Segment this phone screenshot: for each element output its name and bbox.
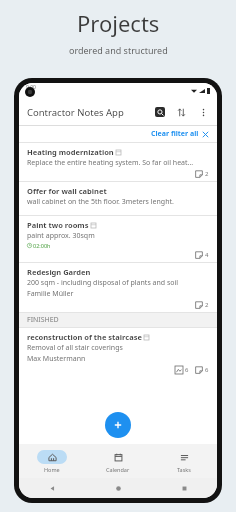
staticText: Projects: [77, 8, 160, 38]
staticText: 6: [205, 366, 209, 374]
staticText: 6: [185, 366, 189, 374]
staticText: Offer for wall cabinet: [27, 186, 107, 196]
staticText: reconstruction of the staircase: [27, 332, 142, 342]
button[interactable]: Calendar: [85, 444, 151, 478]
button[interactable]: Offer for wall cabinet: [19, 182, 217, 215]
staticText: Max Mustermann: [27, 354, 86, 364]
staticText: Clear filter all: [151, 129, 199, 139]
staticText: 2: [205, 301, 209, 309]
staticText: wall cabinet on the 5th floor. 3meters l…: [27, 197, 174, 207]
staticText: Contractor Notes App: [27, 106, 155, 119]
button[interactable]: More options: [197, 106, 209, 118]
button[interactable]: Add project: [105, 412, 131, 438]
staticText: Home: [44, 466, 60, 473]
button[interactable]: Redesign Garden: [19, 263, 217, 312]
staticText: ordered and structured: [69, 44, 168, 56]
staticText: 4: [205, 251, 209, 259]
staticText: Tasks: [177, 466, 191, 473]
button[interactable]: Tasks: [151, 444, 217, 478]
button[interactable]: Recents: [151, 478, 217, 498]
staticText: Paint two rooms: [27, 220, 89, 230]
staticText: Heating modernization: [27, 147, 114, 157]
button[interactable]: Clear filter all: [143, 127, 217, 141]
staticText: 02:00h: [33, 242, 51, 249]
staticText: FINISHED: [27, 315, 59, 325]
staticText: Removal of all stair coverings: [27, 343, 123, 353]
button[interactable]: Paint two rooms: [19, 216, 217, 262]
staticText: Calendar: [106, 466, 130, 473]
button[interactable]: Heating modernization: [19, 143, 217, 181]
button[interactable]: Home: [85, 478, 151, 498]
staticText: 200 sqm - including disposal of plants a…: [27, 278, 179, 288]
staticText: Redesign Garden: [27, 267, 91, 277]
staticText: Familie Müller: [27, 289, 74, 299]
button[interactable]: Back: [19, 478, 85, 498]
button[interactable]: reconstruction of the staircase: [19, 328, 217, 377]
staticText: paint approx. 30sqm: [27, 231, 95, 241]
staticText: 2: [205, 170, 209, 178]
button[interactable]: Sort: [175, 106, 187, 118]
button[interactable]: Search: [155, 107, 165, 117]
staticText: Replace the entire heating system. So fa…: [27, 158, 194, 168]
staticText: 9:00: [26, 84, 36, 91]
button[interactable]: Home: [19, 444, 85, 478]
